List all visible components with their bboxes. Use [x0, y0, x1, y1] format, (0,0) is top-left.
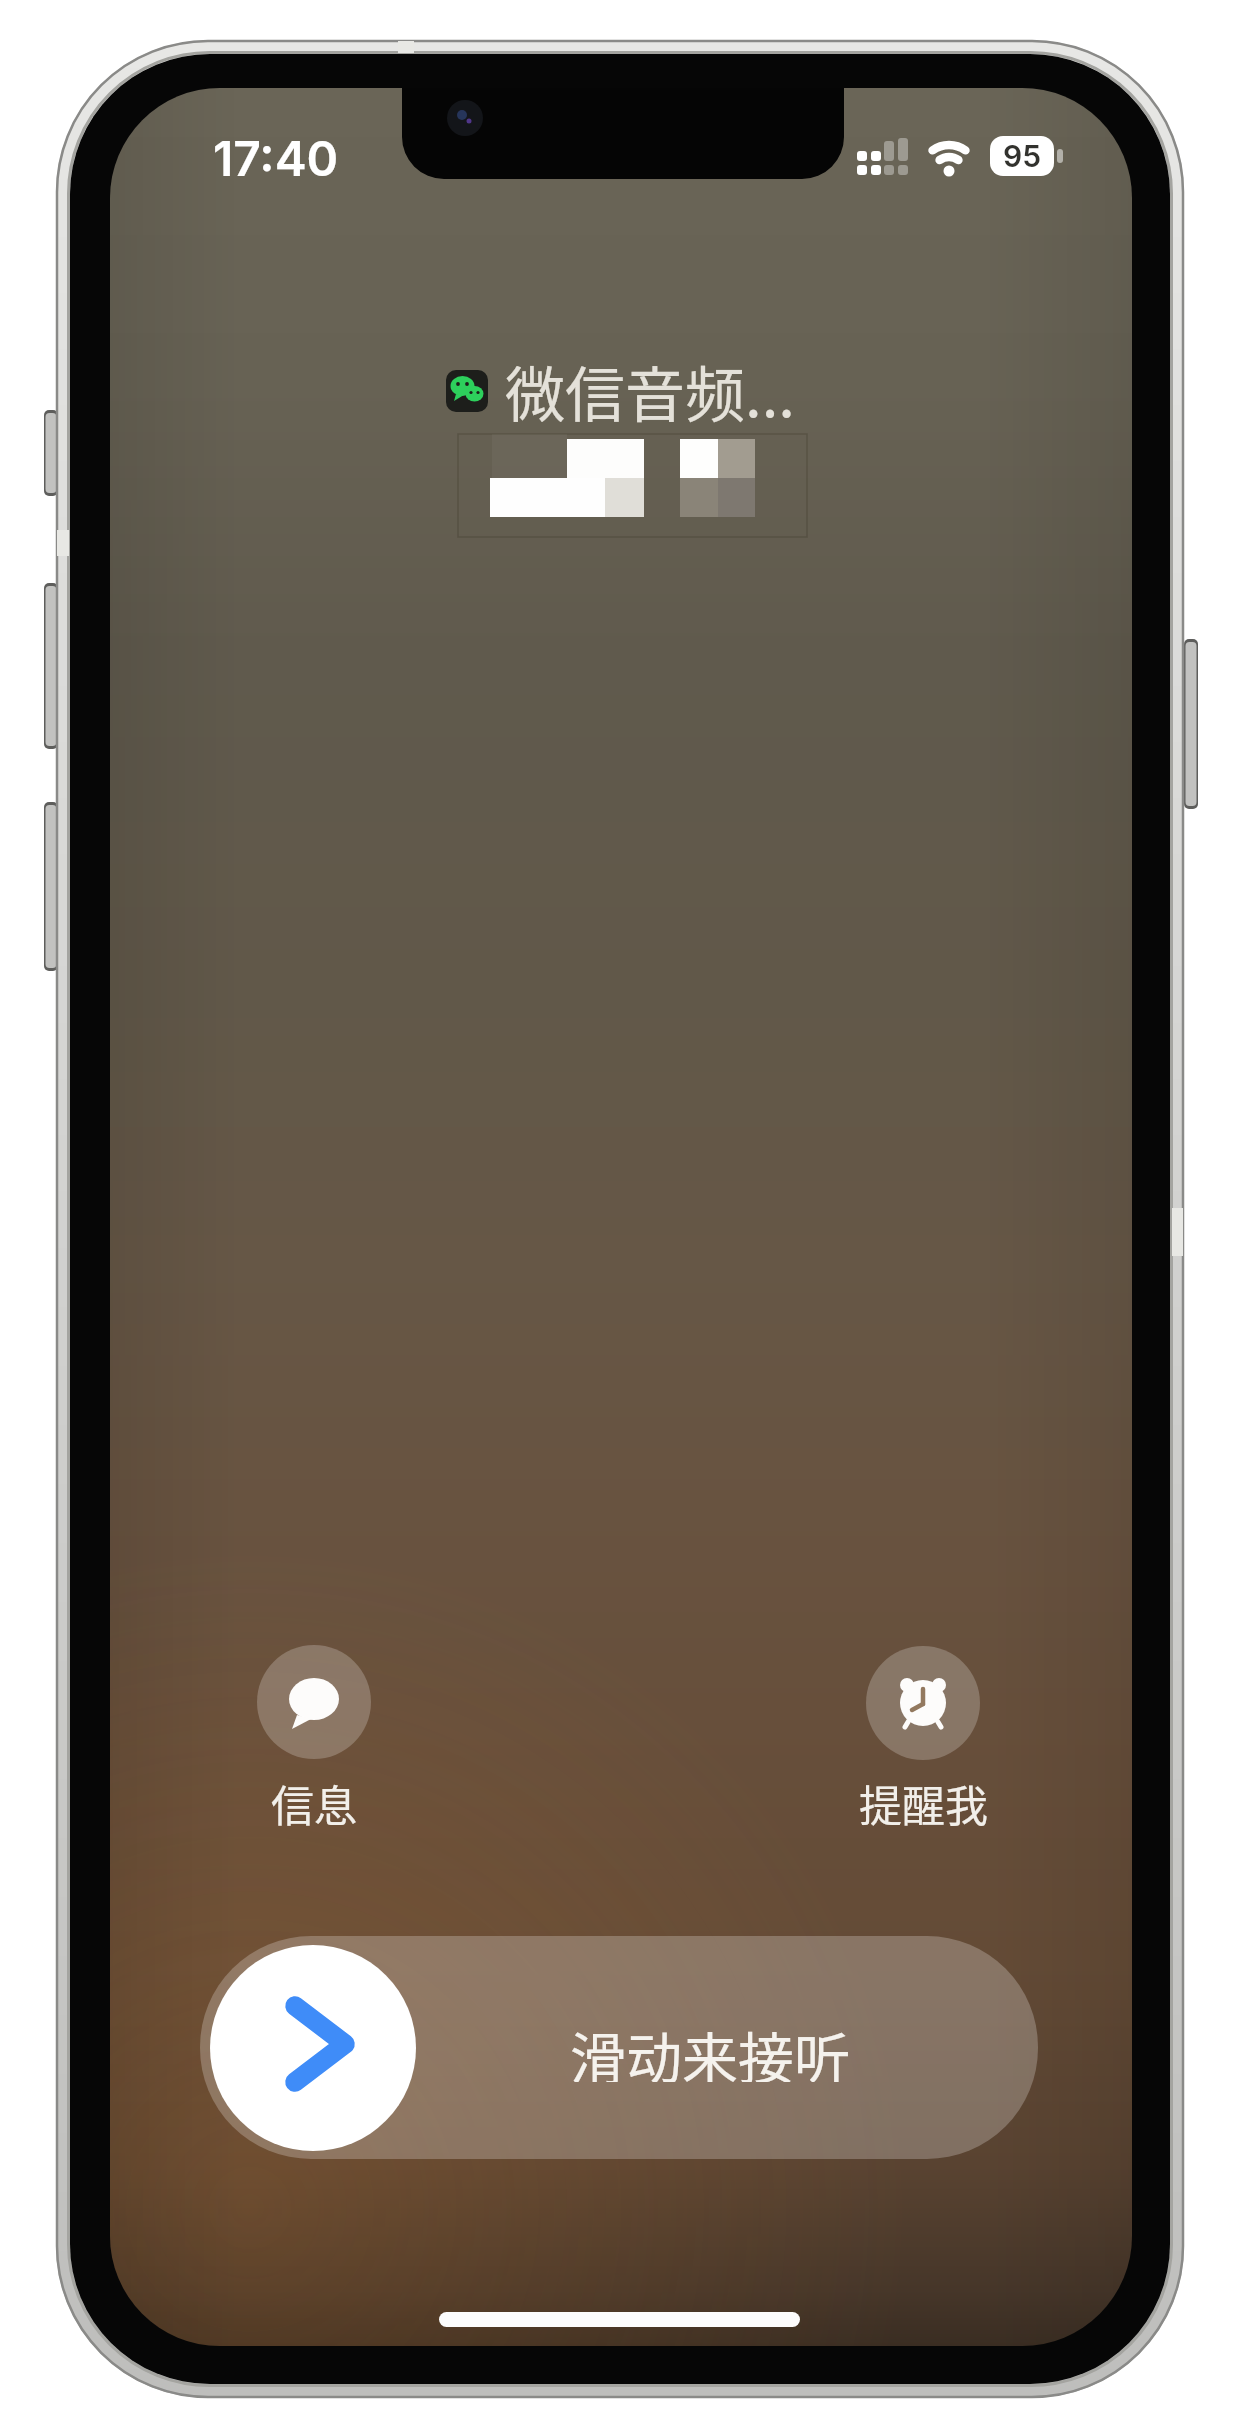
button[interactable] [200, 1936, 1038, 2159]
staticText: 信息 [271, 1772, 357, 1830]
staticText: 滑动来接听 [570, 2014, 850, 2082]
staticText: 微信音频... [505, 347, 796, 434]
button[interactable] [210, 1945, 416, 2151]
staticText: 17:40 [213, 129, 339, 187]
staticText: 95 [1003, 138, 1042, 174]
button[interactable] [866, 1646, 980, 1760]
staticText: 提醒我 [859, 1772, 988, 1830]
button[interactable] [257, 1645, 371, 1759]
